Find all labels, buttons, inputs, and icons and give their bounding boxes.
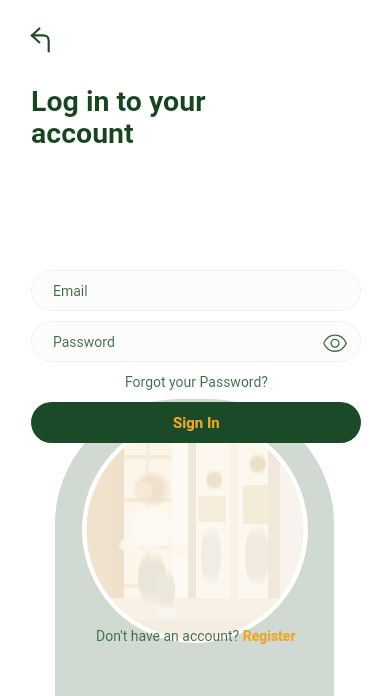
button[interactable]: Sign In — [31, 402, 361, 443]
button[interactable]: Forgot your Password? — [119, 371, 274, 393]
button[interactable]: Back — [14, 10, 66, 62]
staticText: Sign In — [173, 414, 220, 432]
button[interactable]: Show password — [320, 327, 350, 357]
button[interactable]: Password — [31, 321, 361, 362]
button[interactable]: Email — [31, 270, 361, 311]
staticText: Password — [53, 334, 115, 350]
staticText: Email — [53, 283, 88, 299]
staticText: Forgot your Password? — [125, 374, 268, 390]
staticText: Log in to your account — [31, 85, 206, 150]
button[interactable]: Don't have an account? Register — [92, 626, 300, 646]
staticText: Don't have an account? Register — [96, 628, 296, 644]
